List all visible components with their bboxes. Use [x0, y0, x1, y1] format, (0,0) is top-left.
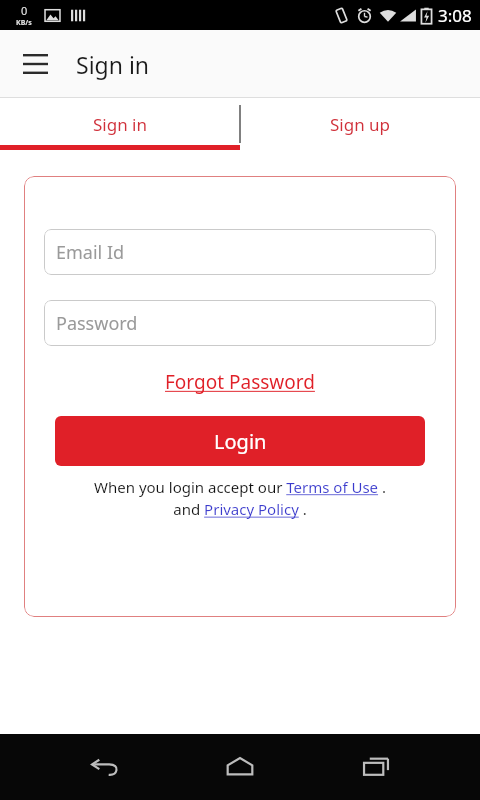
staticText: Email Id: [56, 240, 125, 265]
staticText: When you login accept our Terms of Use .…: [44, 477, 436, 520]
button[interactable]: Password: [44, 300, 436, 346]
button[interactable]: Email Id: [44, 229, 436, 275]
button[interactable]: Open navigation menu: [13, 42, 57, 86]
button[interactable]: Sign in: [0, 98, 240, 150]
button[interactable]: Login: [55, 416, 425, 466]
staticText: Sign up: [330, 113, 391, 136]
button[interactable]: Back: [72, 735, 136, 799]
staticText: Sign in: [76, 49, 150, 80]
button[interactable]: Recent apps: [344, 735, 408, 799]
button[interactable]: Forgot Password: [159, 367, 321, 397]
staticText: 0: [21, 3, 28, 18]
staticText: Password: [56, 311, 138, 336]
button[interactable]: Sign up: [240, 98, 480, 150]
staticText: Login: [214, 428, 267, 455]
staticText: KB/s: [16, 18, 32, 28]
staticText: 3:08: [438, 4, 472, 27]
staticText: Forgot Password: [165, 369, 315, 395]
staticText: Sign in: [93, 113, 147, 136]
button[interactable]: Home: [208, 735, 272, 799]
